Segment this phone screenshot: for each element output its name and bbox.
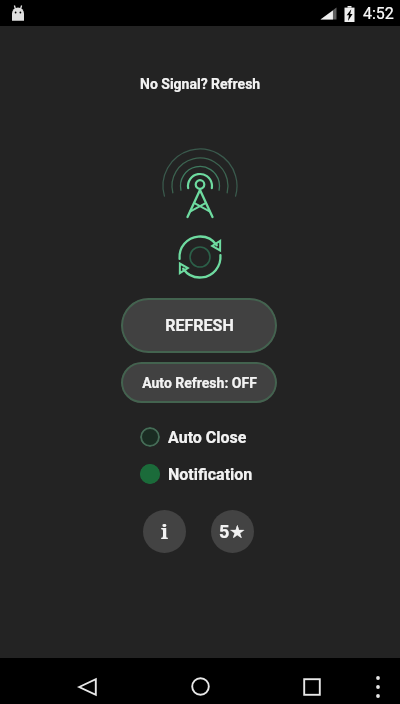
button[interactable]: Rate 5 stars (211, 510, 254, 553)
staticText: REFRESH (165, 316, 234, 335)
staticText: Auto Close (168, 428, 247, 447)
button[interactable]: More options (358, 658, 398, 704)
button[interactable]: Auto Close (140, 425, 260, 449)
staticText: i (161, 518, 169, 545)
button[interactable]: Home (176, 658, 224, 704)
staticText: 4:52 (363, 4, 394, 23)
button[interactable]: Recents (288, 658, 336, 704)
staticText: Auto Refresh: OFF (142, 375, 257, 391)
staticText: Notification (168, 465, 253, 484)
staticText: No Signal? Refresh (140, 76, 261, 92)
button[interactable]: Info (143, 510, 186, 553)
button[interactable]: REFRESH (121, 298, 277, 353)
staticText: 5★ (219, 521, 246, 542)
button[interactable]: Auto Refresh: OFF (121, 362, 277, 403)
button[interactable]: Back (63, 658, 111, 704)
button[interactable]: Notification (140, 462, 260, 486)
